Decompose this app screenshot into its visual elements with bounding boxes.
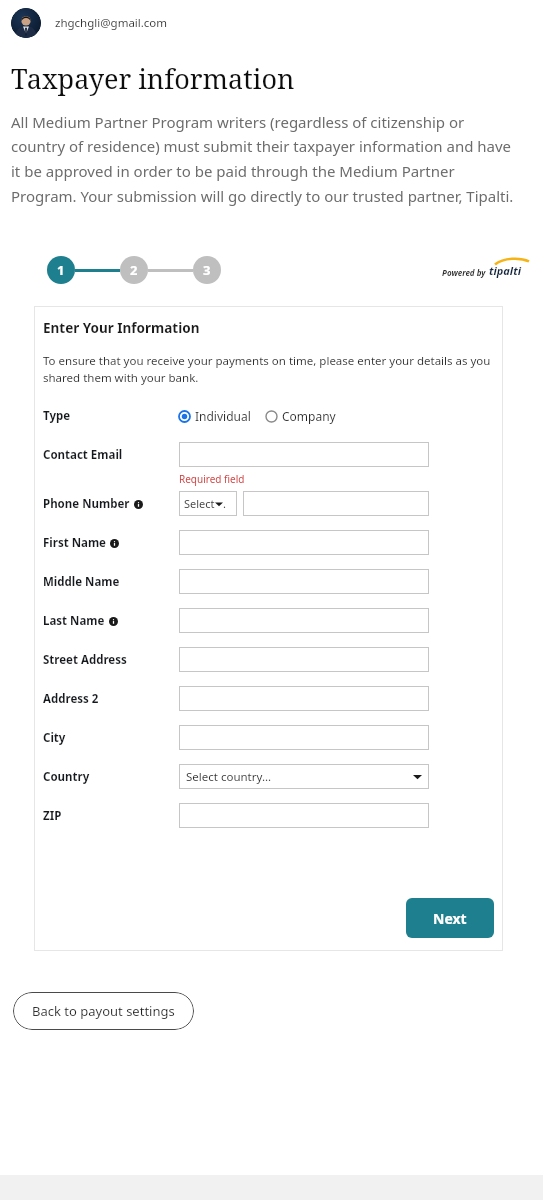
staticText: Last Name [43, 613, 105, 629]
staticText: ZIP [43, 808, 62, 824]
button[interactable]: Account avatar [11, 8, 41, 38]
staticText: Address 2 [43, 691, 99, 707]
staticText: Middle Name [43, 574, 120, 590]
button[interactable]: 1 [47, 256, 75, 284]
staticText: Enter Your Information [43, 319, 200, 337]
staticText: First Name [43, 535, 106, 551]
staticText: Contact Email [43, 447, 123, 463]
staticText: Powered by [442, 267, 486, 278]
button[interactable]: Text field [179, 530, 429, 555]
button[interactable]: 3 [193, 256, 221, 284]
staticText: All Medium Partner Program writers (rega… [11, 112, 519, 207]
staticText: Back to payout settings [32, 1002, 175, 1020]
staticText: Type [43, 408, 71, 424]
button[interactable]: 2 [120, 256, 148, 284]
button[interactable]: Next [406, 898, 494, 938]
staticText: 3 [203, 261, 211, 279]
button[interactable]: Text field [179, 647, 429, 672]
button[interactable]: Select [179, 491, 237, 516]
button[interactable]: Text field [179, 608, 429, 633]
staticText: tipalti [489, 263, 521, 278]
button[interactable]: Text field [179, 686, 429, 711]
staticText: Phone Number [43, 496, 130, 512]
staticText: Next [433, 909, 467, 928]
staticText: To ensure that you receive your payments… [43, 353, 493, 386]
button[interactable]: Text field [179, 725, 429, 750]
staticText: Select country... [186, 769, 272, 785]
staticText: City [43, 730, 66, 746]
button[interactable]: Text field [179, 803, 429, 828]
staticText: Required field [179, 472, 245, 486]
staticText: 1 [57, 261, 65, 279]
button[interactable]: Text field [179, 442, 429, 467]
staticText: Company [282, 408, 336, 424]
staticText: Individual [195, 408, 251, 424]
staticText: Country [43, 769, 90, 785]
staticText: 2 [130, 261, 138, 279]
button[interactable]: Select country... [179, 764, 429, 789]
staticText: zhgchgli@gmail.com [55, 15, 168, 31]
button[interactable]: Text field [243, 491, 429, 516]
staticText: Taxpayer information [11, 60, 295, 97]
button[interactable]: Text field [179, 569, 429, 594]
button[interactable]: Back to payout settings [13, 992, 194, 1030]
button[interactable]: Individual [179, 408, 251, 424]
staticText: Street Address [43, 652, 127, 668]
staticText: . [223, 496, 226, 511]
staticText: Select [184, 496, 215, 511]
button[interactable]: Company [266, 408, 336, 424]
